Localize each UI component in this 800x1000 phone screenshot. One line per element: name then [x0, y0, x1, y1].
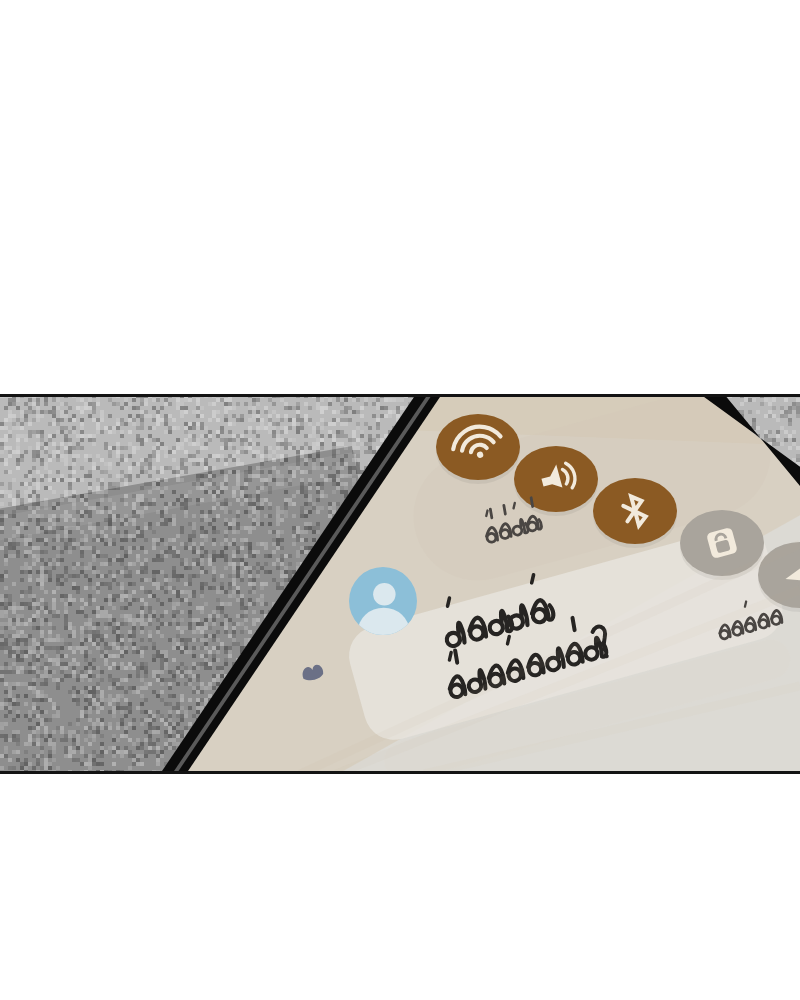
- button[interactable]: Comic panel: phone quick settings and a …: [0, 0, 800, 1000]
